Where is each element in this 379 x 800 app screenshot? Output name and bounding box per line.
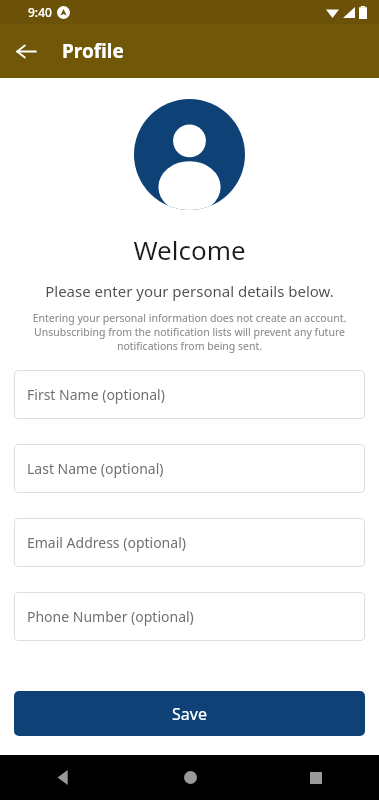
staticText: First Name (optional) [27, 385, 165, 404]
button[interactable]: Phone Number (optional) [14, 592, 365, 641]
staticText: Profile [62, 38, 124, 64]
staticText: Last Name (optional) [27, 459, 164, 478]
button[interactable]: First Name (optional) [14, 370, 365, 419]
staticText: Save [172, 703, 207, 725]
button[interactable]: Home [127, 755, 253, 800]
button[interactable]: Back [6, 31, 46, 71]
button[interactable]: Last Name (optional) [14, 444, 365, 493]
button[interactable]: Recent apps [253, 755, 379, 800]
staticText: Entering your personal information does … [22, 311, 357, 353]
button[interactable]: Back [0, 755, 127, 800]
staticText: 9:40 [28, 4, 52, 20]
staticText: Welcome [12, 232, 367, 267]
staticText: Phone Number (optional) [27, 607, 194, 626]
staticText: Email Address (optional) [27, 533, 186, 552]
button[interactable]: Email Address (optional) [14, 518, 365, 567]
button[interactable]: Save [14, 691, 365, 736]
staticText: Please enter your personal details below… [12, 281, 367, 301]
